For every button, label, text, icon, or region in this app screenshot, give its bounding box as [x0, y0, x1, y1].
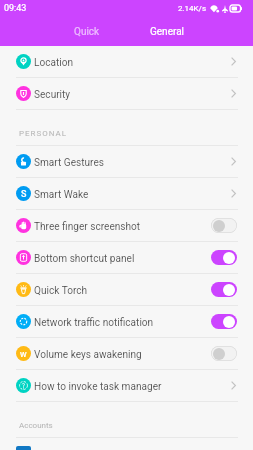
button[interactable]: Smart Gestures — [0, 146, 253, 177]
staticText: Accounts — [19, 421, 53, 430]
staticText: Bottom shortcut panel — [34, 253, 135, 265]
button[interactable]: On — [211, 314, 237, 329]
button[interactable]: Location — [0, 46, 253, 77]
button[interactable]: Quick — [54, 16, 120, 45]
button[interactable]: Off — [211, 218, 237, 233]
other: Open — [231, 381, 236, 390]
other: Open — [231, 57, 236, 66]
staticText: How to invoke task manager — [34, 381, 162, 393]
staticText: Volume keys awakening — [34, 349, 142, 361]
button[interactable]: Bottom shortcut panel — [0, 242, 253, 273]
button[interactable]: On — [211, 250, 237, 265]
staticText: 2.14K/s — [178, 4, 207, 13]
other: Open — [231, 89, 236, 98]
button[interactable] — [0, 438, 253, 450]
button[interactable]: Security — [0, 78, 253, 109]
staticText: PERSONAL — [19, 129, 68, 138]
staticText: S — [21, 189, 27, 200]
button[interactable]: Off — [211, 346, 237, 361]
staticText: Smart Wake — [34, 189, 89, 201]
staticText: General — [150, 26, 185, 38]
button[interactable]: Network traffic notification — [0, 306, 253, 337]
staticText: 09:43 — [4, 3, 27, 14]
button[interactable]: How to invoke task manager — [0, 370, 253, 401]
button[interactable]: On — [211, 282, 237, 297]
staticText: W — [20, 350, 27, 359]
button[interactable]: Three finger screenshot — [0, 210, 253, 241]
button[interactable]: W — [0, 338, 253, 369]
button[interactable]: General — [134, 16, 200, 45]
staticText: Quick Torch — [34, 285, 88, 297]
staticText: Network traffic notification — [34, 317, 154, 329]
button[interactable]: Quick Torch — [0, 274, 253, 305]
staticText: Three finger screenshot — [34, 221, 141, 233]
other: Open — [231, 157, 236, 166]
other: Open — [231, 189, 236, 198]
button[interactable]: S — [0, 178, 253, 209]
staticText: Smart Gestures — [34, 157, 105, 169]
staticText: Location — [34, 57, 74, 69]
staticText: Quick — [74, 26, 100, 38]
staticText: Security — [34, 89, 71, 101]
